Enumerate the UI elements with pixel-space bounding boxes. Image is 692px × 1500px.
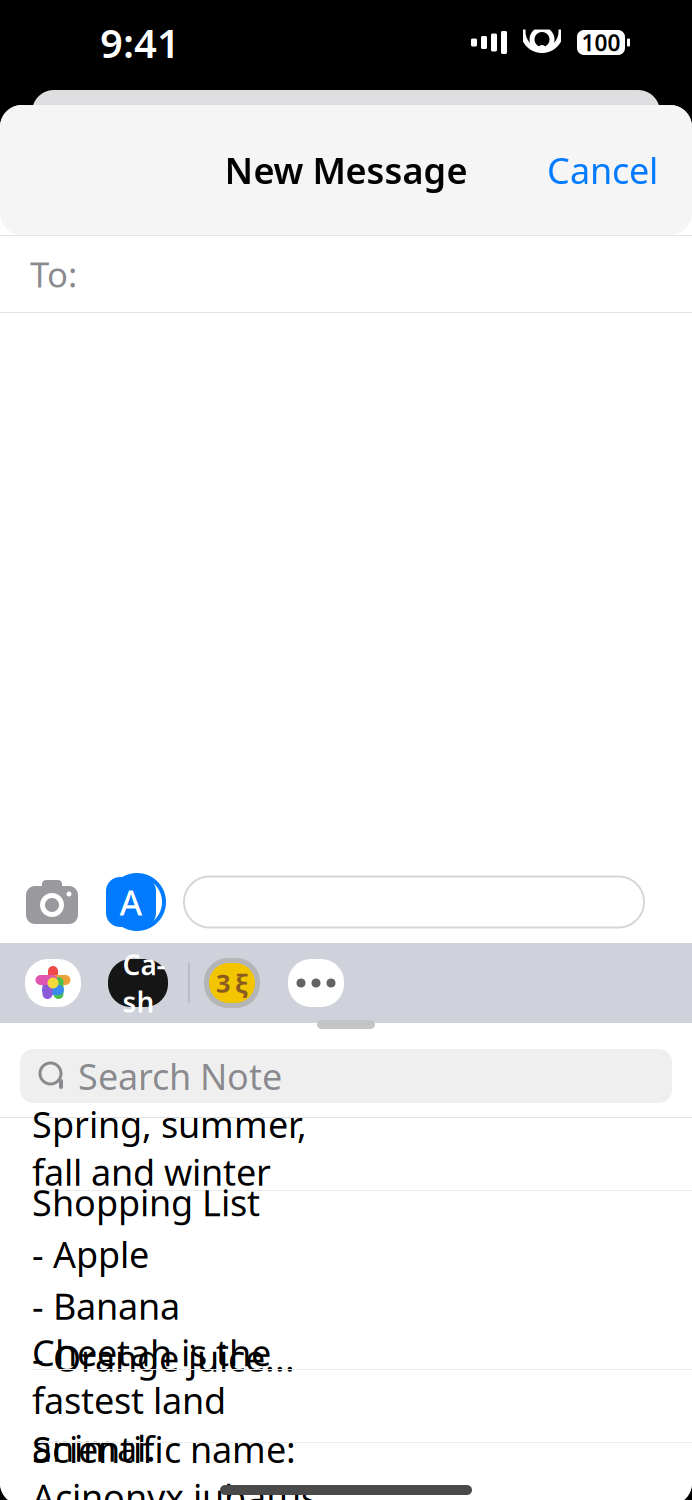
staticText: - Banana	[32, 1282, 180, 1330]
staticText: Spring, summer, fall and winter	[32, 1100, 307, 1196]
button[interactable]: More apps	[288, 959, 344, 1007]
button[interactable]: Search Note	[20, 1049, 672, 1103]
staticText: - Apple	[32, 1230, 149, 1278]
staticText: Search Note	[78, 1052, 282, 1100]
button[interactable]: Memoji	[204, 958, 260, 1008]
button[interactable]: Scientific name: Acinonyx jubatus	[0, 1443, 692, 1500]
button[interactable]: Camera	[14, 871, 90, 933]
button[interactable]: Shopping List	[0, 1191, 692, 1369]
staticText: Cheetah is the fastest land animal.	[32, 1328, 271, 1472]
staticText: New Message	[224, 146, 467, 194]
staticText: ξ	[235, 966, 248, 1000]
button[interactable]: Message field	[184, 876, 644, 927]
staticText: 9:41	[100, 16, 180, 69]
staticText: 3	[216, 966, 230, 1000]
button[interactable]: Apple Cash	[108, 959, 168, 1007]
staticText: A	[119, 879, 142, 925]
button[interactable]: Photos	[25, 959, 81, 1007]
staticText: Cash	[122, 946, 165, 1020]
button[interactable]: Spring, summer, fall and winter	[0, 1118, 692, 1190]
staticText: Shopping List	[32, 1178, 260, 1226]
staticText: 100	[581, 27, 620, 57]
staticText: Cancel	[547, 146, 658, 194]
button[interactable]: Cheetah is the fastest land animal.	[0, 1370, 692, 1442]
button[interactable]: Cancel	[529, 134, 676, 206]
button[interactable]: Apps	[96, 871, 166, 933]
staticText: To:	[30, 251, 77, 297]
staticText: Scientific name: Acinonyx jubatus	[32, 1425, 318, 1500]
button[interactable]: To:	[0, 235, 692, 313]
staticText: - Orange juice...	[32, 1334, 295, 1382]
